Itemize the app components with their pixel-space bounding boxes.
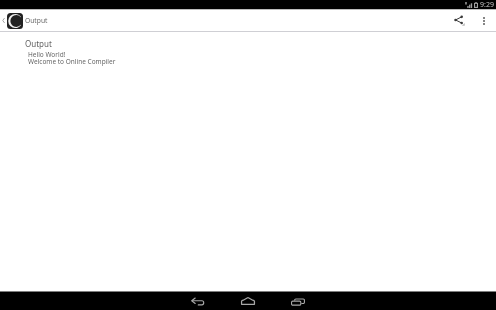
button[interactable]: Recent apps [280,292,316,310]
button[interactable]: Share [447,9,471,32]
staticText: Welcome to Online Compiler [28,57,116,66]
staticText: 9:29 [480,0,494,9]
button[interactable]: Home [230,292,266,310]
staticText: Output [25,38,52,49]
staticText: Hello World! [28,50,66,59]
button[interactable]: More options [474,9,494,32]
staticText: Output [25,16,48,25]
button[interactable]: Navigate up [0,9,22,32]
button[interactable]: Back [180,292,216,310]
